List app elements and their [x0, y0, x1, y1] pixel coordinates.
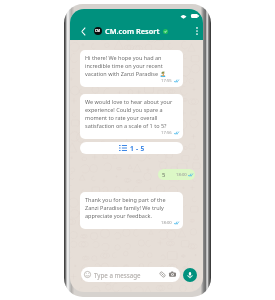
staticText: 5 [162, 171, 166, 179]
button[interactable]: More options [190, 22, 203, 40]
button[interactable]: Thank you for being part of the Zanzi Pa… [80, 192, 183, 229]
staticText: Thank you for being part of the Zanzi Pa… [85, 196, 179, 220]
staticText: Type a message [94, 271, 141, 279]
other: Attach [159, 271, 166, 278]
other: Camera [169, 271, 176, 278]
button[interactable]: Hi there! We hope you had an incredible … [80, 50, 183, 87]
button[interactable]: 1 - 5 [80, 142, 183, 154]
button[interactable]: Back [75, 22, 91, 40]
staticText: We would love to hear about your experie… [85, 98, 179, 130]
button[interactable]: 5 [158, 169, 195, 180]
staticText: 17:55 [161, 78, 172, 84]
staticText: Hi there! We hope you had an incredible … [85, 54, 179, 78]
staticText: CM.com Resort [105, 26, 160, 36]
staticText: 18:00 [176, 172, 187, 178]
button[interactable]: We would love to hear about your experie… [80, 94, 183, 139]
staticText: 1 - 5 [130, 144, 145, 153]
staticText: 17:56 [161, 130, 172, 136]
staticText: 18:00 [161, 220, 172, 226]
button[interactable]: Voice message [183, 268, 197, 282]
staticText: CM [95, 29, 101, 33]
button[interactable]: Type a message [81, 267, 180, 282]
